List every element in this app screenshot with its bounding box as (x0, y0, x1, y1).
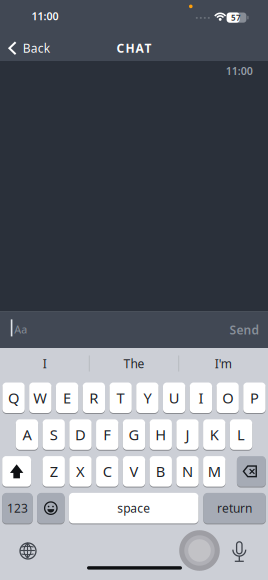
staticText: O (222, 388, 233, 407)
button[interactable]: Back (8, 34, 50, 63)
staticText: I (43, 355, 47, 371)
button[interactable]: R (83, 382, 105, 413)
button[interactable]: U (163, 382, 185, 413)
button[interactable]: W (29, 382, 52, 413)
staticText: K (210, 425, 219, 444)
staticText: S (50, 425, 58, 444)
button[interactable]: Emoji (37, 492, 65, 524)
button[interactable]: J (176, 419, 199, 450)
staticText: W (33, 388, 47, 407)
staticText: J (185, 425, 189, 444)
button[interactable]: H (150, 419, 172, 450)
button[interactable]: X (69, 456, 92, 487)
button[interactable]: C (96, 456, 118, 487)
button[interactable]: Dictation (224, 536, 254, 566)
button[interactable]: A (16, 419, 38, 450)
button[interactable]: AssistiveTouch (179, 530, 220, 571)
button[interactable]: D (69, 419, 92, 450)
button[interactable]: B (150, 456, 172, 487)
staticText: Send (229, 322, 259, 338)
button[interactable]: Send (229, 322, 259, 338)
staticText: 57 (231, 12, 241, 23)
button[interactable]: I (190, 382, 212, 413)
button[interactable]: space (69, 492, 198, 524)
button[interactable]: Y (136, 382, 159, 413)
staticText: A (22, 425, 31, 444)
staticText: U (169, 388, 180, 407)
button[interactable]: S (42, 419, 65, 450)
staticText: P (250, 388, 259, 407)
button[interactable]: I'm (179, 348, 268, 379)
button[interactable]: G (123, 419, 145, 450)
button[interactable]: Z (42, 456, 65, 487)
button[interactable]: K (203, 419, 225, 450)
button[interactable]: I (0, 348, 89, 379)
button[interactable]: Q (2, 382, 25, 413)
button[interactable]: F (96, 419, 118, 450)
staticText: T (117, 388, 125, 407)
staticText: I'm (215, 355, 232, 371)
staticText: C (103, 462, 112, 481)
staticText: D (75, 425, 86, 444)
button[interactable]: N (176, 456, 199, 487)
staticText: space (117, 500, 150, 516)
staticText: M (208, 462, 221, 481)
staticText: C H A T (116, 40, 151, 56)
staticText: B (156, 462, 166, 481)
staticText: Y (143, 388, 151, 407)
button[interactable]: L (230, 419, 252, 450)
staticText: Aa (14, 322, 27, 336)
button[interactable]: The (89, 348, 179, 379)
staticText: G (128, 425, 139, 444)
button[interactable]: Next keyboard (13, 536, 43, 566)
button[interactable]: Shift (2, 456, 31, 487)
staticText: I (198, 388, 203, 407)
staticText: F (103, 425, 111, 444)
button[interactable]: M (203, 456, 225, 487)
button[interactable]: E (56, 382, 78, 413)
staticText: 123 (7, 500, 28, 516)
button[interactable]: V (123, 456, 145, 487)
staticText: 11:00 (31, 9, 58, 23)
staticText: H (155, 425, 166, 444)
staticText: 11:00 (226, 64, 253, 78)
button[interactable]: return (203, 492, 266, 524)
button[interactable]: Delete (237, 456, 266, 487)
button[interactable]: T (109, 382, 132, 413)
button[interactable]: 123 (2, 492, 33, 524)
staticText: L (237, 425, 245, 444)
staticText: E (63, 388, 71, 407)
button[interactable]: O (216, 382, 239, 413)
staticText: N (182, 462, 193, 481)
button[interactable]: P (243, 382, 266, 413)
staticText: R (89, 388, 98, 407)
staticText: V (129, 462, 138, 481)
staticText: Z (50, 462, 58, 481)
staticText: The (123, 355, 144, 371)
staticText: return (217, 500, 252, 516)
staticText: Q (8, 388, 19, 407)
staticText: X (76, 462, 85, 481)
staticText: Back (23, 40, 50, 56)
